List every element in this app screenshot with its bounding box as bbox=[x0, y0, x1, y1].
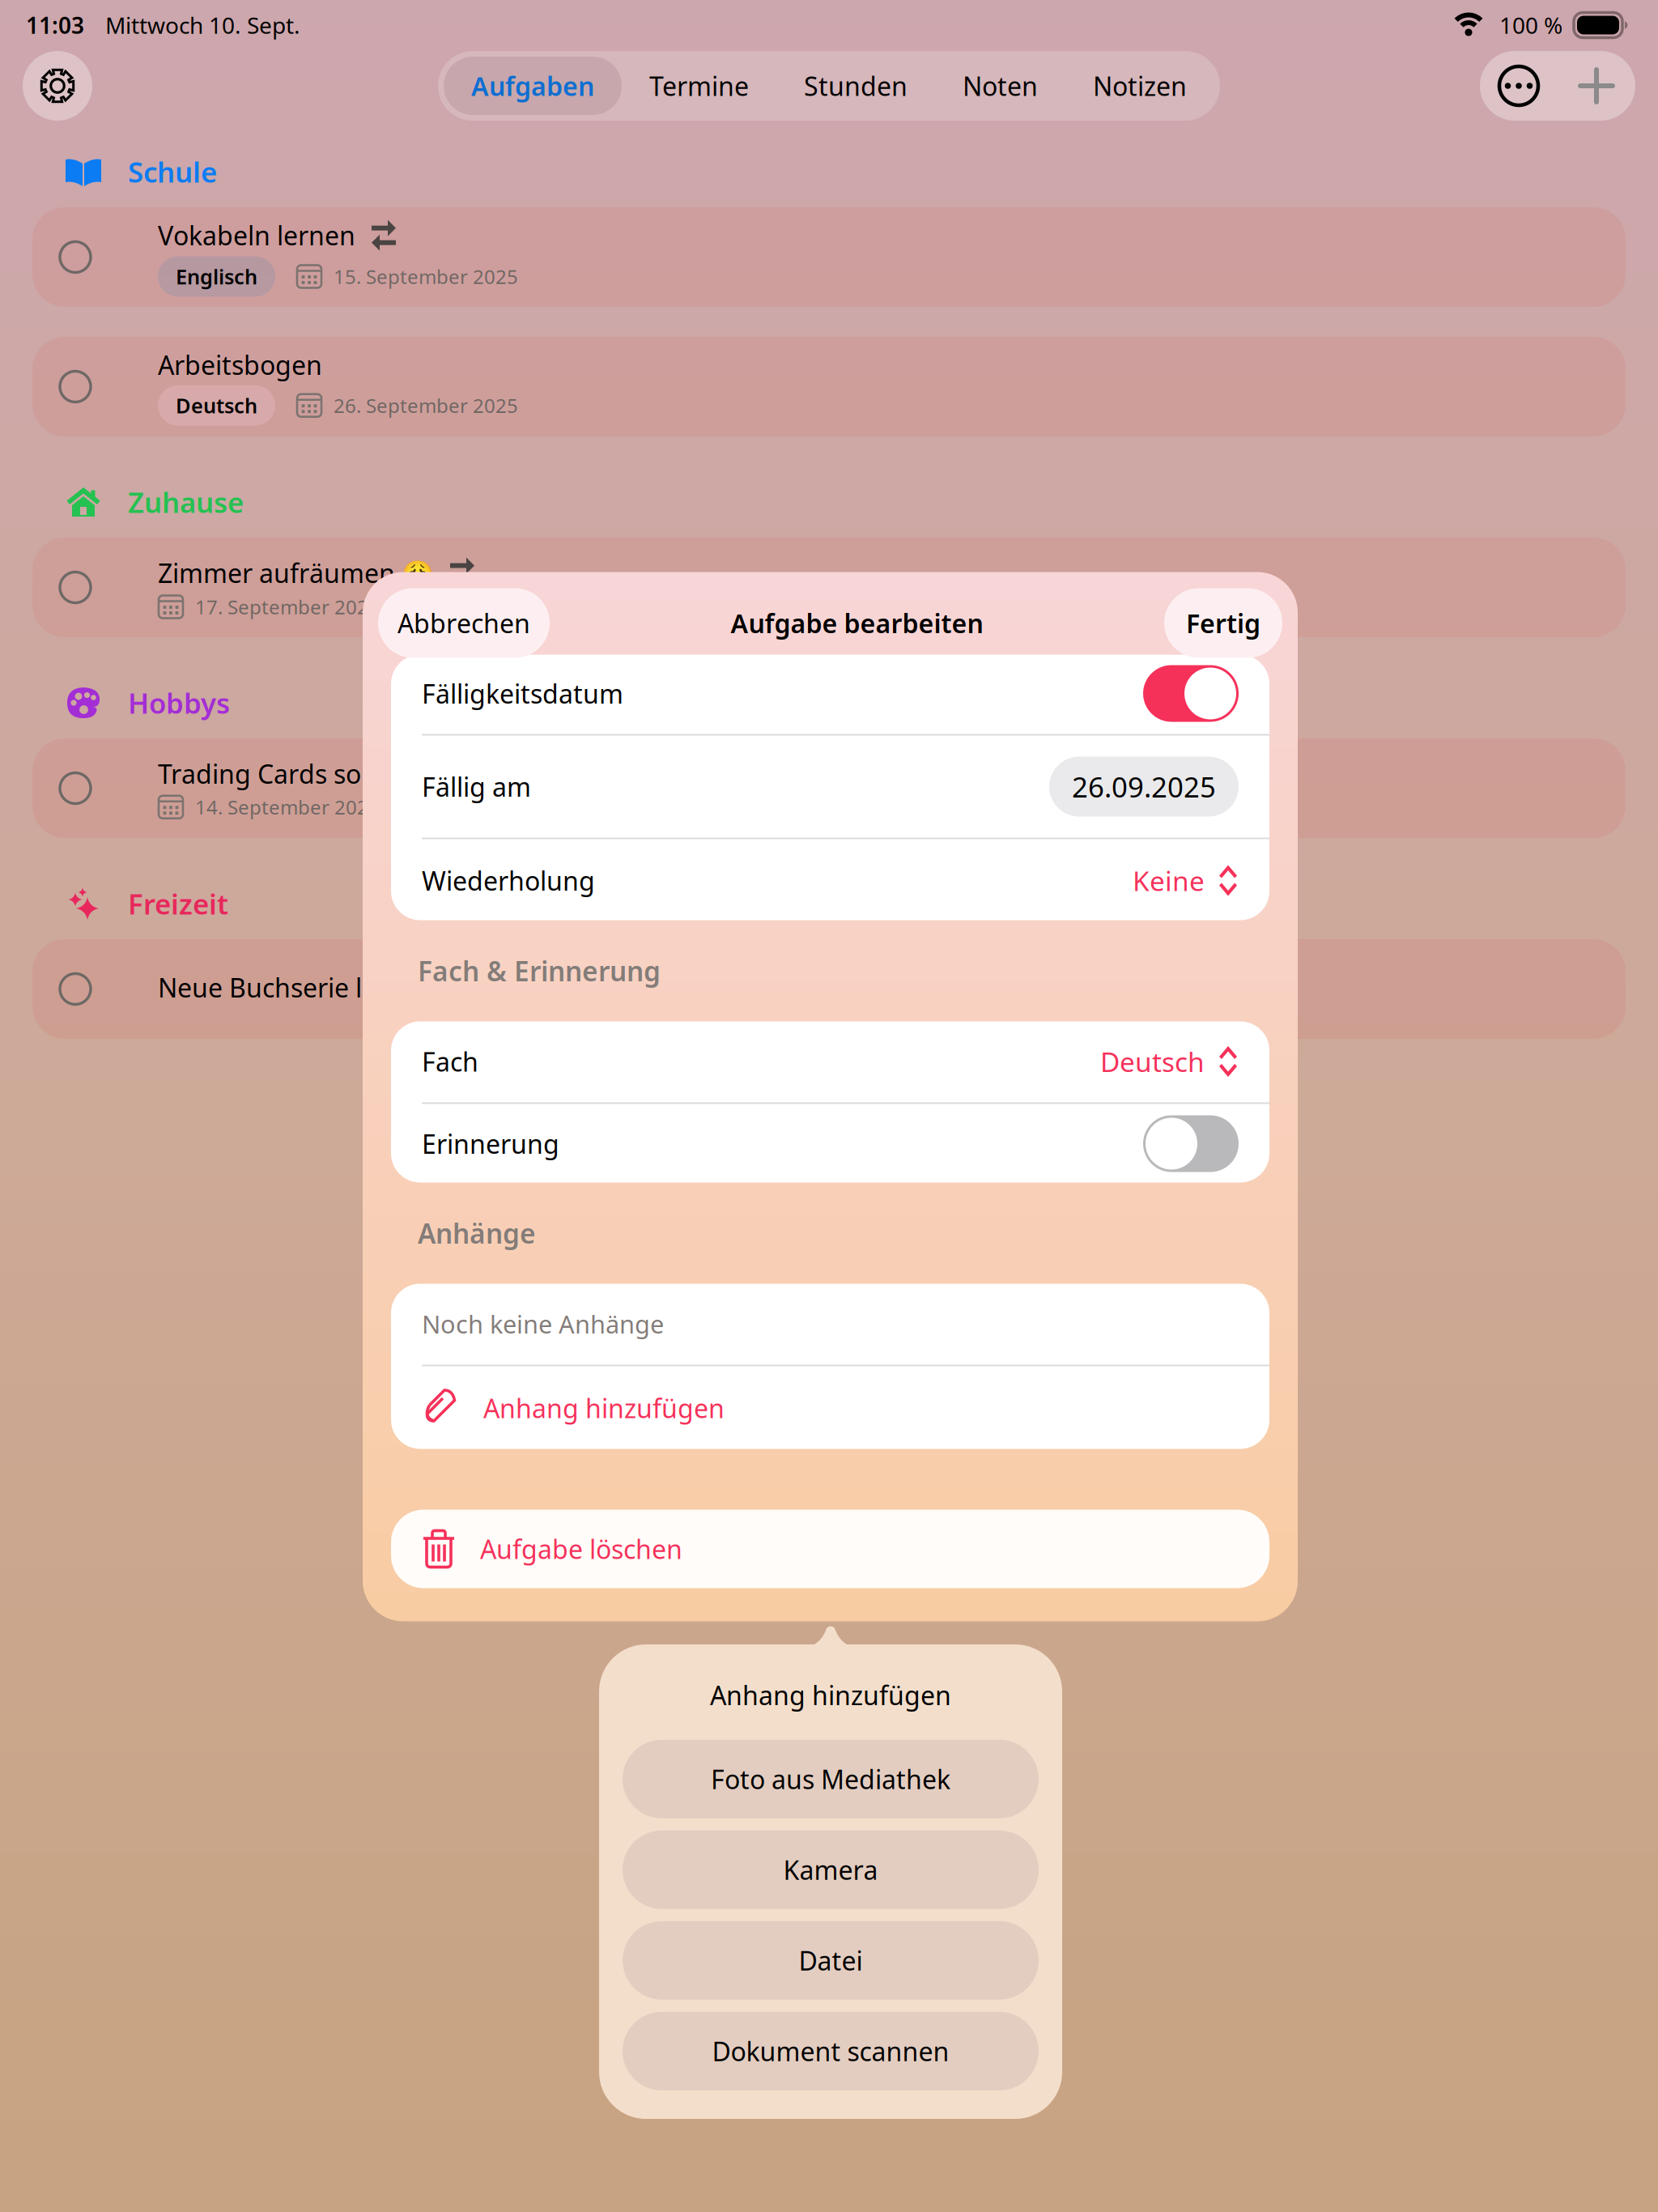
staticText: Datei bbox=[799, 1943, 863, 1978]
staticText: 17. September 2025 bbox=[195, 594, 380, 620]
staticText: Stunden bbox=[804, 69, 908, 103]
staticText: Abbrechen bbox=[397, 606, 530, 640]
staticText: Fach bbox=[422, 1044, 478, 1079]
staticText: Mittwoch 10. Sept. bbox=[105, 10, 300, 40]
staticText: 15. September 2025 bbox=[334, 264, 518, 289]
staticText: 26. September 2025 bbox=[334, 393, 518, 418]
button[interactable]: Abbrechen bbox=[378, 588, 550, 658]
button[interactable]: Stunden bbox=[776, 57, 935, 115]
button[interactable]: Arbeitsbogen bbox=[32, 337, 1626, 436]
button[interactable]: Trading Cards sortieren bbox=[32, 738, 1626, 838]
staticText: Aufgabe bearbeiten bbox=[731, 606, 983, 640]
staticText: Freizeit bbox=[128, 885, 228, 922]
button[interactable]: Kamera bbox=[623, 1830, 1039, 1909]
button[interactable]: Fertig bbox=[1164, 588, 1282, 658]
staticText: Arbeitsbogen bbox=[158, 348, 322, 382]
staticText: Fällig am bbox=[422, 769, 531, 804]
staticText: Deutsch bbox=[176, 392, 257, 419]
staticText: Keine bbox=[1133, 863, 1205, 898]
button[interactable]: Aufgabe hinzufügen bbox=[1558, 51, 1635, 121]
staticText: Foto aus Mediathek bbox=[711, 1762, 950, 1796]
staticText: Dokument scannen bbox=[712, 2034, 949, 2068]
staticText: Deutsch bbox=[1100, 1044, 1205, 1079]
staticText: Vokabeln lernen bbox=[158, 218, 355, 253]
staticText: Trading Cards sortieren bbox=[158, 756, 444, 791]
button[interactable]: Noten bbox=[935, 57, 1065, 115]
button[interactable]: Datei bbox=[623, 1921, 1039, 2000]
button[interactable]: Zimmer aufräumen 😩 bbox=[32, 538, 1626, 637]
button[interactable]: Einstellungen bbox=[23, 51, 92, 121]
staticText: Kamera bbox=[783, 1853, 878, 1887]
staticText: 14. September 2025 bbox=[195, 794, 380, 820]
button[interactable]: Vokabeln lernen bbox=[32, 207, 1626, 307]
staticText: Anhang hinzufügen bbox=[710, 1678, 951, 1712]
staticText: Zimmer aufräumen 😩 bbox=[158, 556, 434, 590]
staticText: 26.09.2025 bbox=[1072, 768, 1216, 805]
staticText: Noch keine Anhänge bbox=[422, 1307, 664, 1340]
button[interactable]: Foto aus Mediathek bbox=[623, 1740, 1039, 1818]
button[interactable]: Neue Buchserie lesen bbox=[32, 939, 1626, 1039]
button[interactable]: Dokument scannen bbox=[623, 2012, 1039, 2090]
staticText: Zuhause bbox=[128, 483, 244, 521]
staticText: Fälligkeitsdatum bbox=[422, 676, 623, 711]
staticText: Noten bbox=[963, 69, 1038, 103]
button[interactable]: Mehr bbox=[1480, 51, 1558, 121]
staticText: 11:03 bbox=[26, 10, 84, 40]
staticText: Termine bbox=[649, 69, 749, 103]
staticText: Anhänge bbox=[418, 1215, 536, 1251]
staticText: Fertig bbox=[1186, 606, 1261, 640]
button[interactable]: Notizen bbox=[1065, 57, 1214, 115]
staticText: Aufgaben bbox=[471, 69, 594, 103]
staticText: Wiederholung bbox=[422, 863, 595, 898]
staticText: Hobbys bbox=[128, 684, 230, 721]
staticText: Neue Buchserie lesen bbox=[158, 970, 419, 1005]
staticText: Schule bbox=[128, 153, 217, 190]
staticText: Anhang hinzufügen bbox=[483, 1391, 725, 1425]
staticText: Fach & Erinnerung bbox=[418, 953, 661, 989]
button[interactable]: Aufgabe löschen bbox=[391, 1510, 1269, 1588]
staticText: Englisch bbox=[176, 263, 257, 290]
staticText: Notizen bbox=[1093, 69, 1187, 103]
staticText: 100 % bbox=[1499, 10, 1562, 40]
staticText: Erinnerung bbox=[422, 1126, 559, 1161]
button[interactable]: Aufgaben bbox=[444, 57, 622, 115]
button[interactable]: Termine bbox=[622, 57, 776, 115]
staticText: Aufgabe löschen bbox=[480, 1532, 682, 1566]
button[interactable]: Anhang hinzufügen bbox=[391, 1366, 1269, 1450]
